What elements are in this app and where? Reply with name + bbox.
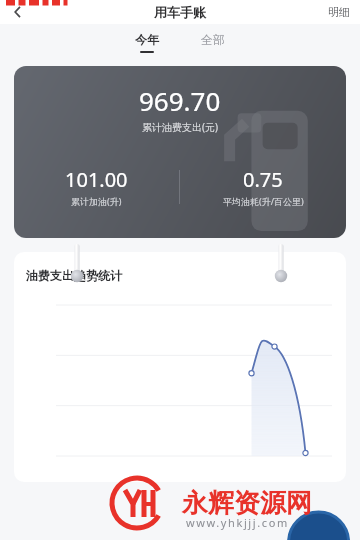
staticText: 平均油耗(升/百公里) bbox=[223, 195, 304, 207]
staticText: 全部 bbox=[201, 32, 225, 47]
button[interactable]: 今年 bbox=[123, 32, 171, 53]
button[interactable]: 油费支出趋势统计 bbox=[14, 252, 346, 482]
staticText: 累计加油(升) bbox=[71, 195, 122, 207]
staticText: www.yhkjjj.com bbox=[186, 515, 289, 530]
button[interactable]: Back bbox=[8, 2, 28, 22]
staticText: 油费支出趋势统计 bbox=[26, 268, 122, 283]
staticText: 用车手账 bbox=[154, 4, 206, 20]
button[interactable]: 969.70 bbox=[14, 66, 346, 238]
button[interactable]: 全部 bbox=[189, 32, 237, 53]
staticText: 今年 bbox=[135, 32, 159, 47]
staticText: 969.70 bbox=[139, 83, 221, 118]
staticText: 101.00 bbox=[65, 166, 128, 193]
staticText: 累计油费支出(元) bbox=[142, 120, 218, 134]
button[interactable]: 明细 bbox=[328, 5, 350, 19]
staticText: 明细 bbox=[328, 5, 350, 19]
staticText: 0.75 bbox=[243, 166, 283, 193]
staticText: 永辉资源网 bbox=[182, 487, 312, 520]
